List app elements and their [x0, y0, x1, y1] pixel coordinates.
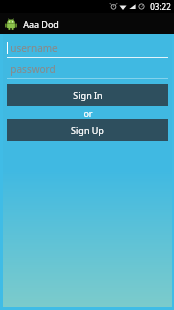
button[interactable]: password: [7, 60, 168, 79]
staticText: 03:22: [150, 1, 171, 12]
staticText: Sign Up: [71, 124, 104, 136]
button[interactable]: Sign In: [7, 84, 168, 106]
staticText: or: [83, 107, 93, 119]
staticText: Aaa Dod: [23, 18, 59, 30]
button[interactable]: username: [7, 39, 168, 58]
staticText: username: [10, 41, 58, 55]
button[interactable]: Sign Up: [7, 119, 168, 141]
staticText: password: [10, 62, 56, 76]
staticText: Sign In: [73, 89, 103, 101]
